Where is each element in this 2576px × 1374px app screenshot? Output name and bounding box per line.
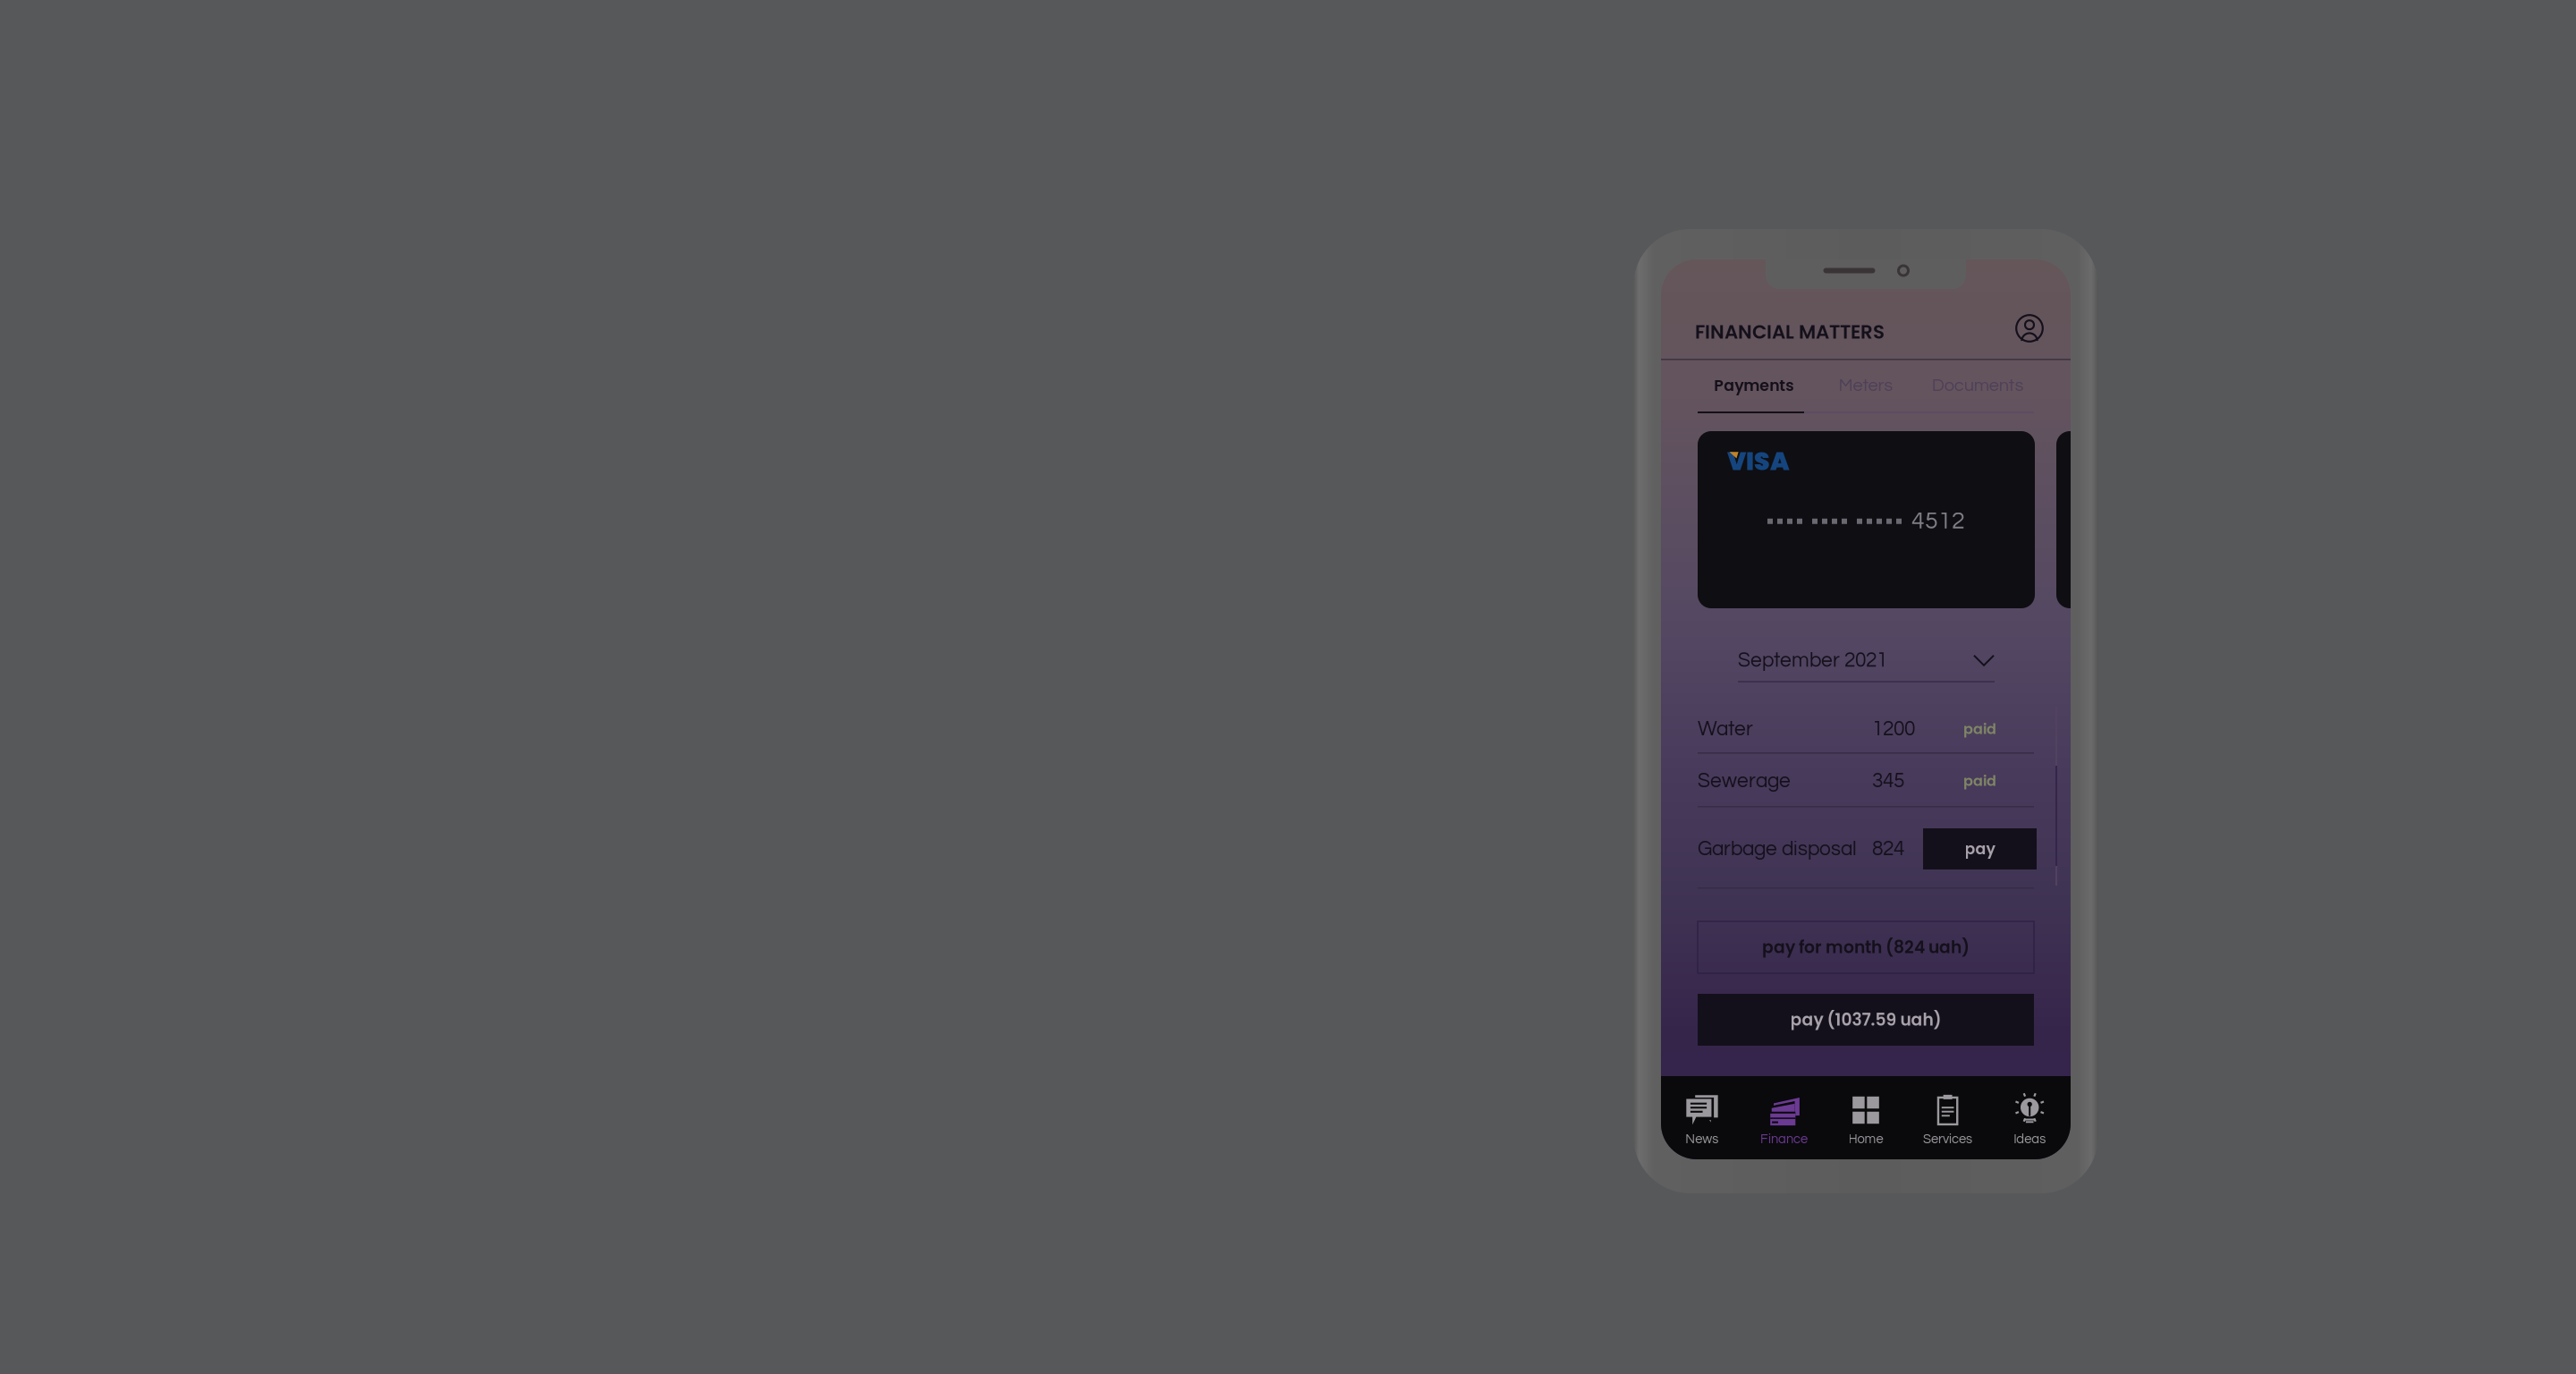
staticText: 824 [1872, 838, 1904, 859]
button[interactable]: News [1661, 1076, 1743, 1159]
staticText: Sewerage [1698, 770, 1791, 791]
staticText: 1200 [1872, 719, 1915, 739]
staticText: September 2021 [1738, 650, 1887, 671]
staticText: Documents [1932, 376, 2024, 395]
staticText: paid [1963, 771, 1996, 791]
staticText: VISA [1727, 444, 1790, 479]
staticText: Home [1848, 1132, 1883, 1146]
staticText: Garbage disposal [1698, 838, 1857, 859]
staticText: News [1685, 1132, 1718, 1146]
staticText: 4512 [1911, 509, 1965, 534]
staticText: Payments [1714, 375, 1794, 396]
button[interactable]: Services [1907, 1076, 1989, 1159]
staticText: pay [1965, 838, 1995, 860]
button[interactable]: Finance [1743, 1076, 1825, 1159]
button[interactable]: pay for month (824 uah) [1698, 921, 2034, 973]
button[interactable]: Meters [1810, 370, 1922, 401]
button[interactable]: pay (1037.59 uah) [1698, 994, 2034, 1046]
button[interactable]: pay [1923, 828, 2037, 869]
button[interactable]: Ideas [1989, 1076, 2071, 1159]
button[interactable]: Documents [1922, 370, 2034, 401]
button[interactable]: Account [2015, 314, 2044, 343]
staticText: Finance [1760, 1132, 1808, 1146]
staticText: FINANCIAL MATTERS [1695, 319, 1885, 345]
staticText: pay for month (824 uah) [1762, 936, 1970, 959]
staticText: Services [1923, 1132, 1972, 1146]
button[interactable]: Payments [1698, 370, 1810, 401]
staticText: pay (1037.59 uah) [1790, 1008, 1941, 1031]
staticText: Water [1698, 719, 1753, 739]
staticText: paid [1963, 719, 1996, 739]
staticText: Meters [1839, 376, 1893, 395]
staticText: 345 [1872, 770, 1904, 791]
button[interactable]: Home [1825, 1076, 1907, 1159]
button[interactable]: September 2021 [1738, 640, 1995, 682]
staticText: Ideas [2014, 1132, 2046, 1146]
